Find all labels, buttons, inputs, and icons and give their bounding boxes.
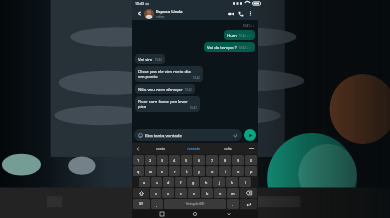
button[interactable]: Home [191,210,199,218]
button[interactable]: Attach [232,132,239,139]
button[interactable]: u [206,166,218,176]
staticText: vontade [187,146,201,151]
staticText: Disse pra ele vim meio dia em ponto [138,68,191,80]
button[interactable]: b [201,188,213,198]
button[interactable]: Ficar com fome pra levar pica [135,96,200,112]
button[interactable]: i [219,166,231,176]
button[interactable]: Back [225,210,233,218]
button[interactable]: Recents [158,210,166,218]
staticText: 2 [149,158,152,163]
staticText: 3 [161,158,164,163]
staticText: Vai sim [138,56,153,62]
button[interactable]: 6 [193,155,205,165]
button[interactable]: s [151,177,162,187]
staticText: e [161,169,164,174]
button[interactable]: 4 [169,155,180,165]
button[interactable]: m [227,188,239,198]
button[interactable]: Vai da tempo ? [204,42,255,52]
staticText: 10:42 [190,106,197,110]
button[interactable]: Português (BR) [164,199,226,209]
button[interactable]: d [163,177,174,187]
button[interactable]: volta [211,143,245,154]
staticText: Não vou nem almoçar [138,86,183,92]
button[interactable]: Não vou nem almoçar [135,84,195,94]
button[interactable]: k [226,177,238,187]
button[interactable]: 0 [245,155,257,165]
button[interactable]: x [162,188,174,198]
button[interactable]: More suggestions [245,143,258,154]
button[interactable]: e [157,166,168,176]
button[interactable]: r [169,166,180,176]
staticText: x [167,191,170,196]
staticText: 8 [224,158,227,163]
staticText: t [186,169,188,174]
button[interactable]: j [213,177,225,187]
staticText: 5 [185,158,188,163]
button[interactable]: , [151,199,163,209]
button[interactable]: v [188,188,200,198]
staticText: m [231,191,235,196]
button[interactable]: c [175,188,187,198]
button[interactable]: Back [135,9,144,18]
staticText: z [155,191,157,196]
staticText: a [143,180,146,185]
button[interactable]: Previous suggestions [132,143,144,154]
button[interactable]: q [133,166,144,176]
staticText: 10:43 [135,1,144,6]
button[interactable]: Emoji [134,129,242,141]
button[interactable]: 2 [145,155,156,165]
staticText: Hum [227,32,237,38]
button[interactable]: l [239,177,251,187]
staticText: 4 [173,158,176,163]
staticText: c [180,191,182,196]
button[interactable]: Esposa Linda [156,9,226,19]
button[interactable]: 7 [206,155,218,165]
button[interactable]: Profile photo [144,9,154,19]
button[interactable]: vonta [144,143,177,154]
button[interactable]: vontade [177,143,211,154]
button[interactable]: z [150,188,161,198]
button[interactable]: o [232,166,244,176]
button[interactable]: 3 [157,155,168,165]
other: Emoji [137,132,143,138]
staticText: . [232,202,234,207]
button[interactable]: g [187,177,199,187]
staticText: 10:42 [193,76,200,80]
button[interactable]: !#1 [133,199,150,209]
button[interactable]: a [139,177,150,187]
button[interactable]: 8 [219,155,231,165]
button[interactable]: p [245,166,257,176]
button[interactable]: 5 [181,155,192,165]
staticText: i [225,169,226,174]
staticText: f [180,180,182,185]
staticText: h [205,180,208,185]
button[interactable]: y [193,166,205,176]
staticText: Ficar com fome pra levar pica [138,98,188,110]
button[interactable]: Backspace [240,188,257,198]
staticText: 10:42 [155,58,162,62]
button[interactable]: n [214,188,226,198]
button[interactable]: . [227,199,239,209]
staticText: j [219,180,220,185]
staticText: Português (BR) [186,202,205,206]
button[interactable]: 1 [133,155,144,165]
button[interactable]: More options [246,9,255,18]
button[interactable]: Disse pra ele vim meio dia em ponto [135,66,203,82]
button[interactable]: Send [244,129,256,141]
staticText: 9 [237,158,240,163]
button[interactable]: f [175,177,186,187]
button[interactable]: Hum [224,30,255,40]
button[interactable]: Shift [133,188,149,198]
button[interactable]: h [200,177,212,187]
button[interactable]: Vai sim [135,54,165,64]
button[interactable]: w [145,166,156,176]
button[interactable]: Enter [240,199,257,209]
button[interactable]: Voice call [236,9,246,19]
staticText: !#1 [139,202,144,206]
staticText: k [231,180,234,185]
button[interactable]: Video call [226,9,236,19]
button[interactable]: 9 [232,155,244,165]
button[interactable]: t [181,166,192,176]
staticText: l [245,180,246,185]
staticText: b [206,191,209,196]
